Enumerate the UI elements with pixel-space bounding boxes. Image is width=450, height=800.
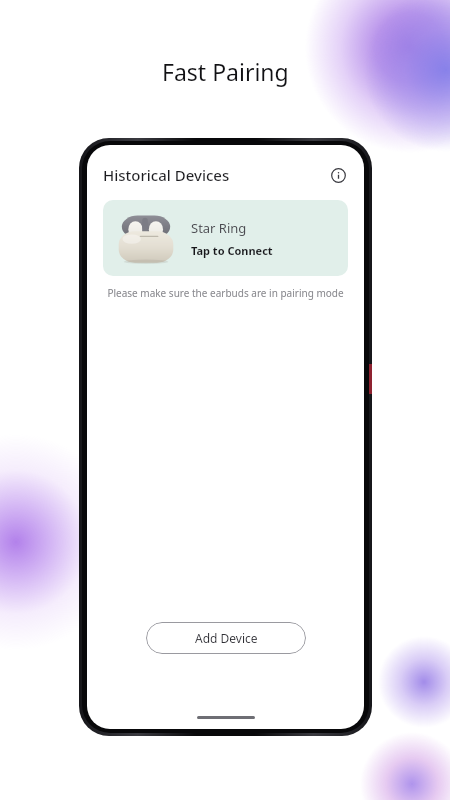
- button[interactable]: Information: [326, 163, 350, 187]
- staticText: Add Device: [195, 630, 258, 646]
- staticText: Fast Pairing: [162, 56, 289, 87]
- button[interactable]: Star Ring: [103, 200, 348, 276]
- button[interactable]: Add Device: [146, 622, 306, 654]
- staticText: Please make sure the earbuds are in pair…: [107, 286, 344, 300]
- staticText: Historical Devices: [103, 165, 230, 185]
- staticText: Star Ring: [191, 219, 247, 237]
- staticText: Tap to Connect: [191, 243, 273, 258]
